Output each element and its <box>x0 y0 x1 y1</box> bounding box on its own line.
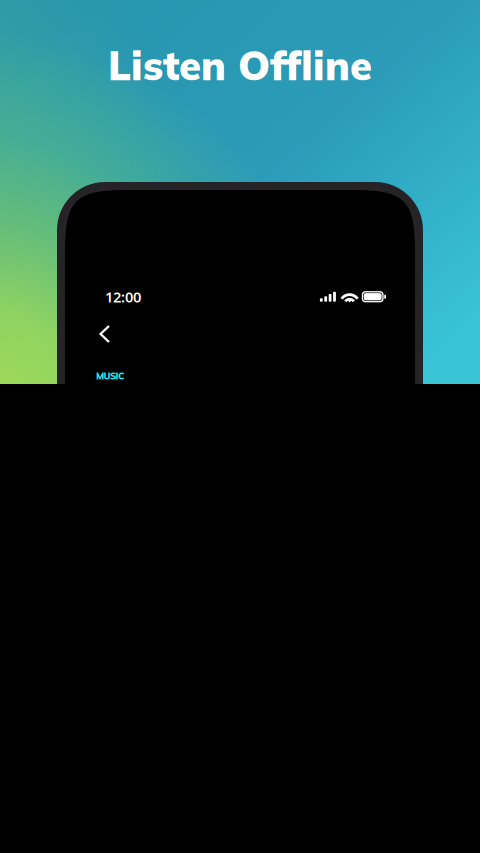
staticText: Listen Offline <box>108 40 372 90</box>
staticText: MUSIC <box>96 370 124 382</box>
staticText: 12:00 <box>105 287 141 306</box>
button[interactable]: Back <box>89 318 121 350</box>
